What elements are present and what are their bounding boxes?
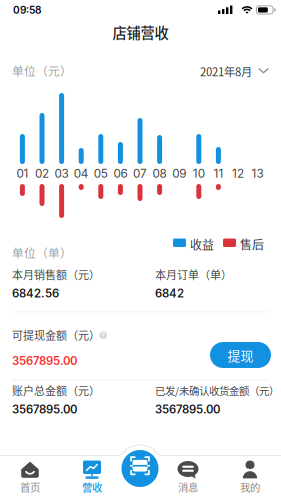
staticText: 05 [94, 166, 108, 181]
staticText: 收益 [190, 235, 214, 253]
staticText: 已发/未确认收货金额（元） [155, 383, 279, 398]
staticText: 营收 [82, 479, 102, 495]
staticText: 首页 [20, 479, 40, 495]
staticText: 12 [232, 166, 244, 181]
button[interactable]: 2021年8月 [200, 63, 270, 77]
staticText: 店铺营收 [112, 22, 168, 43]
staticText: 11 [213, 166, 223, 181]
staticText: 售后 [240, 235, 264, 253]
button[interactable]: 营收 [67, 456, 117, 496]
staticText: 10 [193, 166, 205, 181]
staticText: 13 [252, 166, 264, 181]
staticText: 单位（元） [12, 62, 72, 79]
staticText: 04 [74, 166, 89, 181]
staticText: 09:58 [13, 4, 41, 16]
button[interactable]: 消息 [163, 456, 213, 496]
staticText: 本月销售额（元） [12, 266, 100, 282]
staticText: 消息 [178, 479, 198, 495]
staticText: 6842 [155, 286, 184, 300]
staticText: 03 [55, 166, 69, 181]
staticText: 3567895.00 [155, 402, 220, 416]
staticText: 01 [16, 166, 28, 181]
staticText: 08 [153, 166, 167, 181]
staticText: 本月订单（单） [155, 266, 232, 282]
button[interactable] [121, 450, 158, 487]
staticText: 单位（单） [12, 244, 72, 261]
staticText: 02 [35, 166, 49, 181]
staticText: ? [101, 331, 105, 339]
button[interactable]: 我的 [225, 456, 275, 496]
staticText: 账户总金额（元） [12, 382, 100, 398]
staticText: 06 [113, 166, 127, 181]
staticText: 我的 [240, 479, 260, 495]
button[interactable]: 提现 [210, 342, 271, 368]
staticText: 3567895.00 [12, 402, 77, 416]
button[interactable]: ? [99, 331, 107, 339]
staticText: 07 [133, 166, 147, 181]
staticText: 09 [172, 166, 186, 181]
staticText: 6842.56 [12, 286, 59, 300]
staticText: 可提现金额（元） [12, 327, 100, 343]
staticText: 3567895.00 [12, 354, 77, 368]
staticText: 提现 [227, 346, 253, 364]
staticText: 2021年8月 [200, 63, 252, 79]
button[interactable]: 首页 [5, 456, 55, 496]
